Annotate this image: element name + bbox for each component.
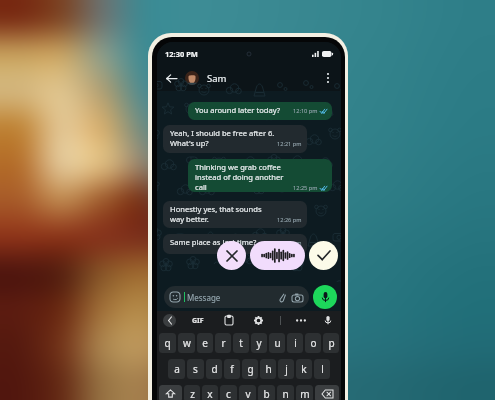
button[interactable]: Stickers: [164, 286, 309, 308]
button[interactable]: Collapse toolbar: [163, 314, 176, 327]
button[interactable]: m: [296, 385, 313, 400]
button[interactable]: Voice input: [321, 314, 334, 327]
staticText: x: [207, 387, 213, 400]
staticText: Same place as last time?: [170, 237, 257, 247]
other: Camera: [292, 293, 303, 302]
button[interactable]: q: [159, 333, 176, 353]
button[interactable]: k: [296, 359, 312, 379]
staticText: k: [301, 362, 307, 376]
button[interactable]: More options: [296, 314, 306, 327]
staticText: g: [247, 362, 254, 376]
other: Stickers: [170, 292, 180, 302]
button[interactable]: Thinking we grab coffee: [188, 159, 332, 192]
staticText: h: [265, 362, 272, 376]
button[interactable]: d: [206, 359, 222, 379]
button[interactable]: p: [323, 333, 339, 353]
button[interactable]: h: [260, 359, 276, 379]
button[interactable]: Honestly yes, that sounds: [163, 201, 307, 228]
staticText: 12:30 PM: [165, 49, 198, 59]
staticText: o: [310, 336, 317, 350]
button[interactable]: l: [314, 359, 330, 379]
button[interactable]: o: [305, 333, 321, 353]
button[interactable]: Settings: [252, 314, 265, 327]
button[interactable]: i: [287, 333, 303, 353]
button[interactable]: w: [178, 333, 195, 353]
staticText: m: [300, 387, 310, 400]
button[interactable]: Shift: [159, 385, 182, 400]
staticText: t: [239, 336, 243, 350]
staticText: 12:27 pm: [277, 239, 302, 247]
staticText: way better.: [170, 214, 209, 224]
staticText: Yeah, I should be free after 6.: [170, 128, 275, 138]
staticText: l: [321, 362, 324, 376]
button[interactable]: Yeah, I should be free after 6.: [163, 125, 307, 153]
staticText: Message: [187, 292, 221, 303]
staticText: d: [211, 362, 218, 376]
staticText: Sam: [207, 72, 227, 85]
button[interactable]: x: [202, 385, 218, 400]
button[interactable]: a: [168, 359, 185, 379]
button[interactable]: s: [187, 359, 204, 379]
button[interactable]: c: [220, 385, 237, 400]
button[interactable]: More options: [322, 69, 334, 87]
button[interactable]: Record voice message: [313, 285, 337, 309]
staticText: r: [221, 336, 226, 350]
staticText: i: [294, 336, 297, 350]
button[interactable]: Backspace: [315, 385, 339, 400]
button[interactable]: Clipboard: [222, 314, 235, 327]
staticText: u: [274, 336, 281, 350]
button[interactable]: z: [184, 385, 200, 400]
button[interactable]: f: [224, 359, 240, 379]
button[interactable]: g: [242, 359, 258, 379]
staticText: What's up?: [170, 138, 209, 148]
staticText: v: [245, 387, 251, 400]
button[interactable]: Cancel: [217, 241, 246, 270]
staticText: Honestly yes, that sounds: [170, 204, 262, 214]
staticText: instead of doing another: [195, 172, 284, 182]
staticText: c: [226, 387, 231, 400]
button[interactable]: Back: [164, 69, 178, 87]
button[interactable]: Send: [309, 241, 338, 270]
button[interactable]: You around later today?: [188, 102, 332, 120]
staticText: w: [183, 336, 191, 350]
button[interactable]: v: [239, 385, 256, 400]
staticText: 12:21 pm: [277, 140, 302, 148]
button[interactable]: y: [251, 333, 267, 353]
button[interactable]: Voice message: [250, 241, 305, 270]
staticText: n: [282, 387, 289, 400]
staticText: p: [328, 336, 335, 350]
staticText: e: [202, 336, 208, 350]
button[interactable]: r: [215, 333, 231, 353]
staticText: call: [195, 182, 207, 192]
staticText: 12:26 pm: [277, 216, 302, 224]
button[interactable]: u: [269, 333, 285, 353]
staticText: y: [256, 336, 262, 350]
staticText: 12:25 pm: [293, 184, 318, 192]
staticText: b: [263, 387, 270, 400]
staticText: z: [190, 387, 195, 400]
button[interactable]: b: [258, 385, 275, 400]
button[interactable]: n: [277, 385, 294, 400]
staticText: j: [285, 362, 288, 376]
button[interactable]: j: [278, 359, 294, 379]
button[interactable]: Same place as last time?: [163, 234, 307, 254]
staticText: f: [230, 362, 234, 376]
button[interactable]: e: [197, 333, 213, 353]
staticText: You around later today?: [195, 105, 280, 115]
staticText: a: [174, 362, 180, 376]
staticText: Thinking we grab coffee: [195, 162, 281, 172]
staticText: q: [164, 336, 171, 350]
staticText: 12:10 pm: [293, 107, 318, 115]
button[interactable]: t: [233, 333, 249, 353]
other: Attach: [278, 292, 286, 302]
button[interactable]: GIF: [192, 316, 204, 326]
staticText: s: [193, 362, 198, 376]
